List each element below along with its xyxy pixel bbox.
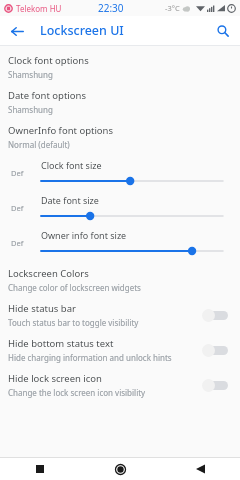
staticText: Change color of lockscreen widgets [8,282,141,293]
staticText: -3°C [165,3,180,13]
staticText: Def [11,238,24,248]
staticText: Touch status bar to toggle visibility [8,317,139,328]
button[interactable]: OwnerInfo font options [0,119,240,154]
staticText: 22:30 [98,1,124,15]
button[interactable]: Search [210,18,236,44]
button[interactable]: Def [0,225,240,260]
button[interactable]: Recent apps [0,458,80,480]
button[interactable]: Hide bottom status text [0,332,240,367]
button[interactable]: Clock font options [0,49,240,84]
button[interactable]: Hide bottom status text [200,340,232,360]
staticText: Lockscreen UI [40,22,124,39]
staticText: Hide charging information and unlock hin… [8,352,172,363]
button[interactable]: Back [4,18,30,44]
staticText: Normal (default) [8,139,70,150]
staticText: Telekom HU [16,3,62,14]
button[interactable]: Back [160,458,240,480]
staticText: Change the lock screen icon visibility [8,387,146,398]
staticText: Clock font options [8,54,89,67]
staticText: OwnerInfo font options [8,124,114,137]
staticText: Date font size [41,194,99,206]
staticText: Lockscreen Colors [8,267,89,280]
staticText: Owner info font size [41,229,127,241]
staticText: Hide lock screen icon [8,372,102,385]
staticText: Shamshung [8,104,53,115]
staticText: Hide bottom status text [8,337,114,350]
button[interactable]: Hide lock screen icon [200,375,232,395]
button[interactable]: Lockscreen Colors [0,262,240,297]
button[interactable]: Hide status bar [0,297,240,332]
staticText: Def [11,168,24,178]
button[interactable]: Hide lock screen icon [0,367,240,402]
staticText: Date font options [8,89,86,102]
button[interactable]: Def [0,190,240,225]
staticText: Clock font size [41,159,102,171]
button[interactable]: Hide status bar [200,305,232,325]
button[interactable]: Date font options [0,84,240,119]
staticText: Def [11,203,24,213]
staticText: Shamshung [8,69,53,80]
button[interactable]: Def [0,155,240,190]
staticText: Hide status bar [8,302,76,315]
button[interactable]: Home [80,458,160,480]
